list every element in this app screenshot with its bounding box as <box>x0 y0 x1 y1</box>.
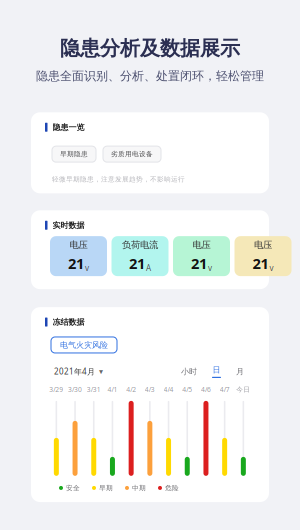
staticText: 2021年4月 <box>54 366 95 377</box>
staticText: 今日 <box>236 385 250 393</box>
staticText: 隐患分析及数据展示 <box>60 36 240 61</box>
staticText: ▾ <box>99 367 103 376</box>
staticText: 3/29 <box>49 385 63 394</box>
button[interactable]: 劣质用电设备 <box>103 146 161 162</box>
staticText: 4/6 <box>201 385 211 394</box>
staticText: 实时数据 <box>52 220 84 230</box>
staticText: 21 <box>129 254 145 273</box>
staticText: 中期 <box>132 484 146 492</box>
staticText: 安全 <box>66 484 80 492</box>
staticText: 4/3 <box>145 385 155 394</box>
staticText: 4/5 <box>182 385 192 394</box>
staticText: 危险 <box>165 484 179 492</box>
staticText: 4/2 <box>126 385 136 394</box>
button[interactable]: 小时 <box>181 367 197 376</box>
button[interactable]: 早期隐患 <box>52 146 96 162</box>
button[interactable]: 电气火灾风险 <box>51 337 117 353</box>
staticText: 劣质用电设备 <box>111 150 153 158</box>
staticText: 4/1 <box>107 385 117 394</box>
staticText: A <box>146 262 151 273</box>
staticText: 3/31 <box>87 385 101 394</box>
staticText: 月 <box>236 367 244 376</box>
staticText: 轻微早期隐患，注意发展趋势，不影响运行 <box>52 175 185 183</box>
staticText: 早期 <box>99 484 113 492</box>
staticText: 电压 <box>69 239 87 251</box>
staticText: 早期隐患 <box>60 150 88 158</box>
staticText: 4/4 <box>163 385 173 394</box>
staticText: 小时 <box>181 367 197 376</box>
staticText: v <box>208 262 212 273</box>
staticText: v <box>269 262 273 273</box>
staticText: 21 <box>68 254 84 273</box>
staticText: 日 <box>212 365 220 375</box>
staticText: 电压 <box>192 239 210 251</box>
staticText: 3/30 <box>68 385 82 394</box>
staticText: 电压 <box>254 239 272 251</box>
staticText: 冻结数据 <box>52 317 84 327</box>
staticText: 21 <box>252 254 268 273</box>
button[interactable]: 月 <box>236 367 244 376</box>
staticText: 4/7 <box>220 385 230 394</box>
staticText: 隐患全面识别、分析、处置闭环，轻松管理 <box>36 69 264 83</box>
staticText: 电气火灾风险 <box>60 340 108 350</box>
staticText: 负荷电流 <box>122 239 158 251</box>
staticText: 21 <box>191 254 207 273</box>
button[interactable]: 2021年4月 <box>54 366 103 377</box>
staticText: v <box>85 262 89 273</box>
staticText: 隐患一览 <box>52 122 84 132</box>
